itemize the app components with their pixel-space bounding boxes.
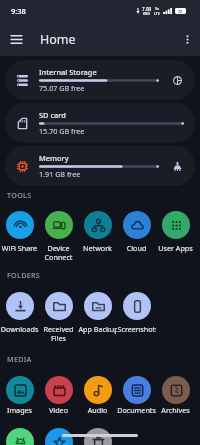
button[interactable]: Recycle Bin: [78, 428, 117, 445]
staticText: WiFi Share: [0, 243, 39, 253]
button[interactable]: Clean memory: [167, 156, 187, 176]
staticText: Internal Storage: [39, 67, 97, 77]
button[interactable]: Cloud: [117, 211, 156, 269]
button[interactable]: Archives: [156, 376, 195, 434]
button[interactable]: App Backup: [78, 292, 117, 350]
staticText: Network: [78, 243, 117, 253]
staticText: Device Connect: [39, 243, 78, 262]
button[interactable]: Analyze storage: [167, 70, 187, 90]
button[interactable]: Documents: [117, 376, 156, 434]
button[interactable]: Internal Storage: [5, 60, 195, 100]
staticText: LTE: [154, 11, 160, 16]
staticText: Cloud: [117, 243, 156, 253]
staticText: Images: [0, 405, 39, 415]
staticText: FOLDERS: [7, 270, 41, 280]
staticText: SD card: [39, 110, 66, 120]
button[interactable]: Received Files: [39, 292, 78, 350]
staticText: User Apps: [156, 243, 195, 253]
button[interactable]: More options: [174, 22, 200, 56]
staticText: 1.91 GB free: [39, 169, 81, 179]
staticText: 9:38: [11, 6, 26, 16]
button[interactable]: Images: [0, 376, 39, 434]
staticText: Archives: [156, 405, 195, 415]
staticText: Downloads: [0, 324, 39, 334]
staticText: Documents: [117, 405, 156, 415]
button[interactable]: User Apps: [156, 211, 195, 269]
button[interactable]: Audio: [78, 376, 117, 434]
staticText: App Backup: [78, 324, 117, 334]
staticText: 7.00: [142, 6, 152, 12]
button[interactable]: Favorites: [39, 428, 78, 445]
staticText: Screenshots: [117, 324, 156, 334]
staticText: Audio: [78, 405, 117, 415]
staticText: Video: [39, 405, 78, 415]
button[interactable]: Video: [39, 376, 78, 434]
button[interactable]: Open navigation menu: [0, 22, 32, 56]
staticText: Home: [40, 31, 76, 48]
staticText: 72: [178, 9, 183, 14]
button[interactable]: Downloads: [0, 292, 39, 350]
button[interactable]: SD card: [5, 103, 195, 143]
staticText: Vo: [155, 6, 160, 11]
button[interactable]: WiFi Share: [0, 211, 39, 269]
button[interactable]: Memory: [5, 146, 195, 186]
staticText: MEDIA: [7, 354, 32, 364]
staticText: TOOLS: [7, 190, 32, 200]
staticText: 15.70 GB free: [39, 126, 85, 136]
button[interactable]: Network: [78, 211, 117, 269]
staticText: 75.07 GB free: [39, 83, 85, 93]
staticText: Memory: [39, 153, 69, 163]
staticText: Received Files: [39, 324, 78, 343]
button[interactable]: Device Connect: [39, 211, 78, 269]
staticText: KB/S: [143, 12, 151, 16]
button[interactable]: Apps: [0, 428, 39, 445]
button[interactable]: Screenshots: [117, 292, 156, 350]
